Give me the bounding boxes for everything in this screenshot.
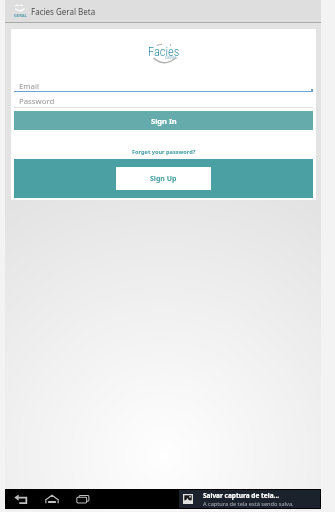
staticText: Email — [19, 81, 40, 92]
staticText: A captura de tela está sendo salva. — [203, 500, 294, 508]
staticText: Facies — [148, 44, 180, 59]
staticText: Sign In — [151, 116, 177, 126]
staticText: Facies Geral Beta — [31, 6, 96, 17]
button[interactable]: Home — [37, 489, 66, 509]
button[interactable]: Sign In — [14, 111, 313, 130]
button[interactable]: Recents — [69, 489, 97, 509]
staticText: Forget your password? — [132, 148, 196, 156]
button[interactable]: Sign Up — [116, 167, 211, 190]
staticText: GERAL — [165, 55, 178, 60]
staticText: Sign Up — [150, 174, 177, 184]
button[interactable]: Back — [7, 489, 35, 509]
staticText: GERAL — [14, 13, 27, 18]
staticText: Salvar captura de tela... — [203, 491, 280, 500]
staticText: Password — [19, 96, 55, 107]
button[interactable]: Forget your password? — [11, 144, 316, 159]
button[interactable]: Salvar captura de tela... — [179, 490, 320, 508]
